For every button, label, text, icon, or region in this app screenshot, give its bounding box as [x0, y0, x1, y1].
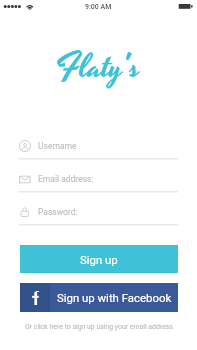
- staticText: Sign up: [80, 253, 118, 266]
- staticText: Flaty's: [56, 44, 141, 92]
- button[interactable]: Or click here to sign up using your emai…: [20, 323, 178, 331]
- staticText: Email address:: [38, 174, 94, 184]
- button[interactable]: Username: [19, 127, 178, 160]
- staticText: Username: [38, 141, 77, 151]
- button[interactable]: Sign up with Facebook: [20, 283, 178, 312]
- button[interactable]: Password:: [19, 193, 178, 226]
- staticText: 9:00 AM: [85, 3, 112, 11]
- staticText: Sign up with Facebook: [57, 291, 172, 304]
- button[interactable]: Sign up: [20, 245, 178, 273]
- button[interactable]: Email address:: [19, 160, 178, 193]
- staticText: Or click here to sign up using your emai…: [25, 323, 173, 331]
- staticText: Password:: [38, 207, 78, 217]
